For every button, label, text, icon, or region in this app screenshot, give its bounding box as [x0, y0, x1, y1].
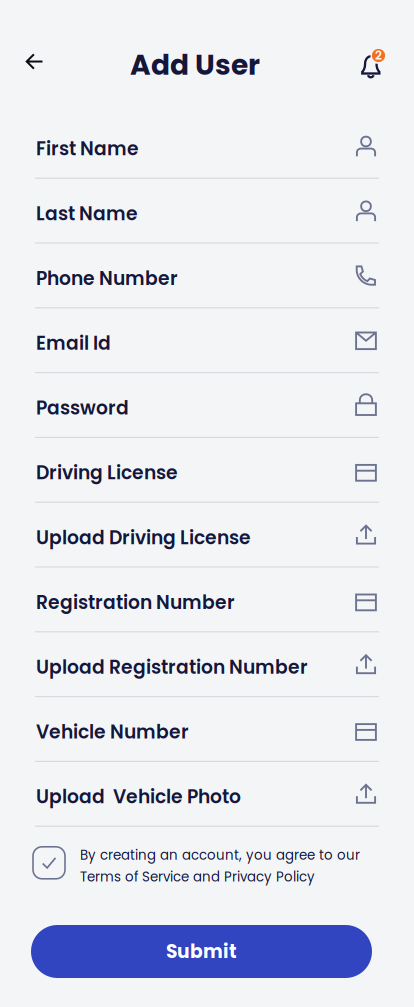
staticText: Email Id: [36, 330, 111, 356]
staticText: Terms of Service and Privacy Policy: [80, 867, 315, 886]
button[interactable]: By creating an account, you agree to our: [0, 827, 414, 890]
button[interactable]: Last Name: [0, 179, 414, 244]
staticText: Add User: [130, 45, 260, 85]
staticText: Driving License: [36, 460, 178, 486]
button[interactable]: First Name: [0, 114, 414, 179]
staticText: Phone Number: [36, 265, 178, 291]
button[interactable]: Driving License: [0, 438, 414, 503]
button[interactable]: Email Id: [0, 308, 414, 373]
button[interactable]: Upload Registration Number: [0, 632, 414, 697]
button[interactable]: Registration Number: [0, 568, 414, 632]
button[interactable]: Back: [11, 42, 55, 86]
button[interactable]: Upload Vehicle Photo: [0, 762, 414, 827]
staticText: Upload Vehicle Photo: [36, 784, 241, 810]
button[interactable]: Submit: [31, 925, 372, 978]
button[interactable]: Phone Number: [0, 244, 414, 308]
button[interactable]: Notifications: [353, 42, 397, 86]
staticText: Submit: [166, 938, 237, 964]
staticText: First Name: [36, 136, 139, 162]
staticText: 2: [375, 47, 382, 64]
staticText: Upload Registration Number: [36, 654, 308, 680]
button[interactable]: Password: [0, 373, 414, 438]
button[interactable]: Upload Driving License: [0, 503, 414, 568]
staticText: Last Name: [36, 200, 138, 227]
button[interactable]: Vehicle Number: [0, 697, 414, 762]
staticText: Upload Driving License: [36, 524, 251, 551]
staticText: Registration Number: [36, 589, 235, 615]
staticText: By creating an account, you agree to our: [80, 846, 360, 864]
staticText: Password: [36, 395, 129, 421]
staticText: Vehicle Number: [36, 719, 189, 745]
